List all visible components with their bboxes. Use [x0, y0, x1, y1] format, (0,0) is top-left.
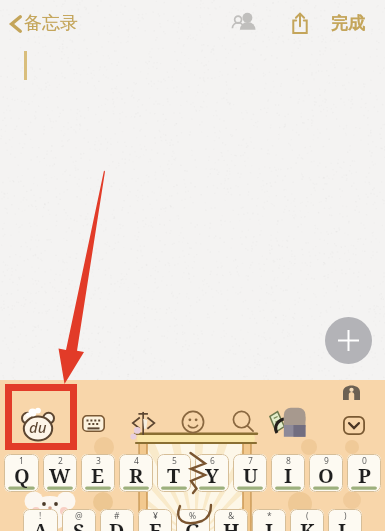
staticText: @ — [75, 510, 83, 522]
staticText: 3 — [96, 455, 101, 467]
button[interactable]: 8 — [271, 454, 305, 492]
staticText: 2 — [58, 455, 63, 467]
button[interactable]: Hide keyboard — [341, 412, 367, 438]
staticText: ) — [344, 510, 347, 522]
staticText: ¥ — [153, 510, 158, 522]
button[interactable]: 9 — [309, 454, 343, 492]
button[interactable]: % — [176, 509, 210, 531]
staticText: R — [129, 462, 144, 489]
staticText: 4 — [134, 455, 139, 467]
staticText: T — [167, 462, 181, 489]
staticText: L — [338, 517, 352, 531]
button[interactable]: Collaborate — [228, 5, 262, 39]
staticText: S — [73, 517, 85, 531]
staticText: 6 — [210, 455, 215, 467]
button[interactable]: ¥ — [138, 509, 172, 531]
staticText: 9 — [324, 455, 329, 467]
button[interactable]: 5 — [157, 454, 191, 492]
staticText: O — [318, 462, 334, 489]
button[interactable]: * — [252, 509, 286, 531]
button[interactable]: 备忘录 — [8, 12, 78, 35]
button[interactable]: 完成 — [331, 13, 365, 34]
button[interactable]: Emoji — [179, 408, 207, 436]
button[interactable]: Keyboard layout — [79, 409, 107, 437]
staticText: & — [228, 510, 235, 522]
button[interactable]: Font size — [338, 380, 364, 404]
button[interactable]: 1 — [4, 454, 39, 492]
button[interactable]: Add attachment — [325, 317, 372, 364]
staticText: % — [189, 510, 197, 522]
staticText: 8 — [286, 455, 291, 467]
staticText: H — [223, 517, 240, 531]
button[interactable]: 6 — [195, 454, 229, 492]
staticText: Q — [14, 462, 30, 489]
staticText: # — [114, 510, 120, 522]
staticText: ! — [39, 510, 42, 522]
staticText: W — [49, 462, 71, 489]
staticText: du — [29, 417, 47, 437]
button[interactable]: Search — [230, 409, 256, 435]
button[interactable]: 4 — [119, 454, 153, 492]
button[interactable]: Share — [284, 7, 316, 39]
button[interactable]: 3 — [81, 454, 115, 492]
staticText: 5 — [172, 455, 177, 467]
staticText: D — [109, 517, 125, 531]
button[interactable]: Handwriting — [129, 407, 159, 437]
staticText: U — [243, 462, 258, 489]
staticText: I — [284, 462, 293, 489]
button[interactable]: 7 — [233, 454, 267, 492]
staticText: 7 — [248, 455, 253, 467]
button[interactable]: ) — [328, 509, 362, 531]
staticText: ( — [306, 510, 309, 522]
button[interactable]: @ — [62, 509, 96, 531]
button[interactable]: 0 — [347, 454, 381, 492]
staticText: F — [149, 517, 162, 531]
staticText: Y — [205, 462, 219, 489]
staticText: K — [300, 517, 315, 531]
staticText: P — [358, 462, 371, 489]
button[interactable]: Baidu keyboard — [18, 404, 58, 444]
staticText: 0 — [362, 455, 367, 467]
button[interactable]: ( — [290, 509, 324, 531]
staticText: J — [265, 517, 273, 531]
staticText: E — [91, 462, 105, 489]
staticText: 完成 — [331, 13, 365, 34]
button[interactable]: ! — [23, 509, 58, 531]
staticText: 1 — [19, 455, 24, 467]
button[interactable]: & — [214, 509, 248, 531]
staticText: * — [267, 510, 272, 522]
button[interactable]: 2 — [43, 454, 77, 492]
staticText: G — [185, 517, 201, 531]
button[interactable]: # — [100, 509, 134, 531]
button[interactable]: Sticker — [268, 404, 316, 446]
staticText: A — [33, 517, 49, 531]
staticText: 备忘录 — [24, 12, 78, 35]
